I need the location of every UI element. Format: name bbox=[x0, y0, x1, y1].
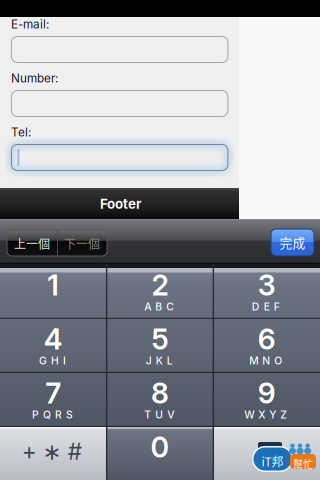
staticText: K bbox=[156, 354, 163, 367]
staticText: 幫忙 bbox=[293, 456, 313, 471]
button[interactable]: 6 bbox=[213, 318, 320, 372]
staticText: J bbox=[146, 354, 152, 367]
button[interactable]: 完成 bbox=[271, 229, 314, 256]
staticText: Number: bbox=[11, 71, 58, 85]
staticText: iT邦 bbox=[261, 452, 283, 470]
staticText: Q bbox=[43, 408, 51, 421]
staticText: N bbox=[262, 354, 270, 367]
staticText: 下一個 bbox=[64, 235, 100, 252]
staticText: U bbox=[155, 408, 163, 421]
button[interactable]: 9 bbox=[213, 372, 320, 426]
staticText: R bbox=[55, 408, 62, 421]
staticText: E bbox=[264, 300, 270, 313]
staticText: V bbox=[167, 408, 174, 421]
staticText: 7 bbox=[45, 376, 61, 410]
staticText: P bbox=[32, 408, 39, 421]
staticText: L bbox=[167, 354, 173, 367]
staticText: I bbox=[63, 354, 66, 367]
staticText: T bbox=[144, 408, 151, 421]
button[interactable]: 4 bbox=[0, 318, 107, 372]
button[interactable]: 3 bbox=[213, 264, 320, 318]
button[interactable] bbox=[11, 144, 228, 170]
button[interactable]: Delete bbox=[213, 426, 320, 480]
button[interactable]: 2 bbox=[107, 264, 213, 318]
button[interactable]: 8 bbox=[107, 372, 213, 426]
staticText: B bbox=[155, 300, 162, 313]
button[interactable]: 7 bbox=[0, 372, 107, 426]
staticText: 1 bbox=[47, 268, 59, 302]
staticText: + ∗ # bbox=[22, 438, 82, 465]
staticText: S bbox=[66, 408, 73, 421]
staticText: 4 bbox=[44, 322, 63, 356]
button[interactable]: 0 bbox=[107, 426, 213, 480]
staticText: 8 bbox=[151, 376, 169, 410]
staticText: A bbox=[144, 300, 151, 313]
button[interactable] bbox=[11, 36, 228, 62]
staticText: C bbox=[166, 300, 174, 313]
staticText: 3 bbox=[258, 268, 276, 302]
staticText: 2 bbox=[151, 268, 168, 302]
staticText: Y bbox=[269, 408, 276, 421]
staticText: Z bbox=[280, 408, 287, 421]
button[interactable]: 1 bbox=[0, 264, 107, 318]
staticText: 6 bbox=[258, 322, 276, 356]
staticText: 上一個 bbox=[14, 235, 50, 252]
staticText: H bbox=[51, 354, 59, 367]
staticText: G bbox=[39, 354, 47, 367]
staticText: 0 bbox=[150, 430, 169, 464]
staticText: 完成 bbox=[279, 233, 305, 251]
staticText: E-mail: bbox=[11, 17, 49, 31]
button[interactable]: 5 bbox=[107, 318, 213, 372]
staticText: F bbox=[274, 300, 280, 313]
button[interactable]: + ∗ # bbox=[0, 426, 107, 480]
button[interactable]: 下一個 bbox=[57, 230, 107, 256]
staticText: M bbox=[249, 354, 258, 367]
staticText: W bbox=[244, 408, 254, 421]
staticText: 5 bbox=[151, 322, 168, 356]
staticText: Footer bbox=[100, 196, 141, 212]
staticText: O bbox=[274, 354, 282, 367]
staticText: 9 bbox=[258, 376, 276, 410]
button[interactable]: 上一個 bbox=[7, 230, 57, 256]
staticText: D bbox=[252, 300, 260, 313]
button[interactable] bbox=[11, 90, 228, 116]
staticText: Tel: bbox=[11, 125, 31, 139]
staticText: X bbox=[258, 408, 265, 421]
